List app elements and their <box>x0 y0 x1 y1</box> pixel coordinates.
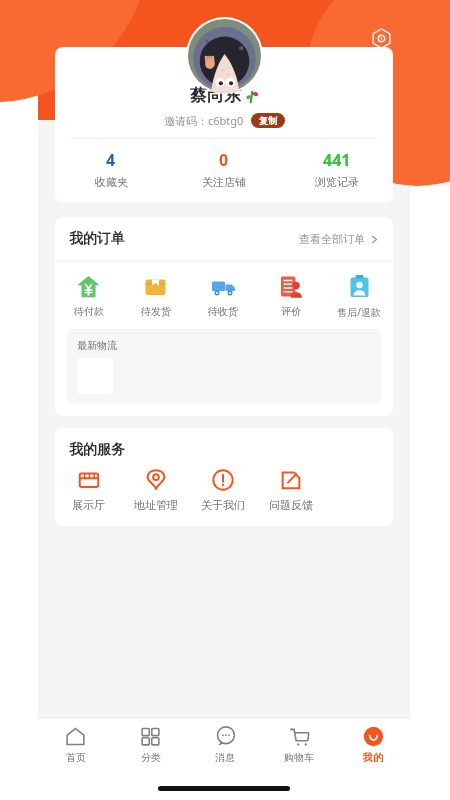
button[interactable]: 我的 <box>336 718 410 772</box>
staticText: 蔡尚东 <box>190 85 241 106</box>
staticText: 关于我们 <box>201 498 245 512</box>
staticText: 邀请码：c6btg0 <box>164 113 244 128</box>
staticText: 查看全部订单 <box>299 232 365 246</box>
button[interactable]: Settings <box>366 23 396 53</box>
button[interactable]: 待收货 <box>189 274 257 318</box>
staticText: 地址管理 <box>134 498 178 512</box>
staticText: 4 <box>106 149 116 171</box>
button[interactable]: 0 <box>167 149 280 189</box>
staticText: 购物车 <box>284 751 314 764</box>
staticText: 待发货 <box>141 305 171 318</box>
button[interactable]: 消息 <box>188 718 262 772</box>
button[interactable]: 问题反馈 <box>257 469 325 512</box>
button[interactable]: 4 <box>55 149 167 189</box>
staticText: 441 <box>323 149 351 171</box>
staticText: 浏览记录 <box>315 175 359 189</box>
staticText: 复制 <box>259 115 277 126</box>
button[interactable]: 展示厅 <box>55 469 122 512</box>
staticText: 关注店铺 <box>202 175 246 189</box>
staticText: 消息 <box>215 751 235 764</box>
staticText: 问题反馈 <box>269 498 313 512</box>
staticText: 售后/退款 <box>337 305 381 319</box>
button[interactable]: 分类 <box>113 718 188 772</box>
button[interactable]: 我的订单 <box>55 217 393 261</box>
staticText: 待收货 <box>208 305 238 318</box>
button[interactable]: 购物车 <box>262 718 336 772</box>
staticText: 分类 <box>141 751 161 764</box>
button[interactable]: 待付款 <box>55 274 122 318</box>
button[interactable]: 首页 <box>38 718 113 772</box>
staticText: 我的 <box>363 751 383 764</box>
button[interactable]: 地址管理 <box>122 469 189 512</box>
staticText: 0 <box>219 149 229 171</box>
button[interactable]: 售后/退款 <box>325 274 393 319</box>
staticText: 首页 <box>66 751 86 764</box>
staticText: 我的服务 <box>69 441 125 459</box>
staticText: 评价 <box>281 305 301 318</box>
button[interactable]: 评价 <box>257 274 325 318</box>
button[interactable]: 441 <box>280 149 393 189</box>
staticText: 展示厅 <box>72 498 105 512</box>
staticText: 待付款 <box>74 305 104 318</box>
button[interactable]: 关于我们 <box>189 469 257 512</box>
button[interactable]: 复制 <box>251 113 285 128</box>
staticText: 收藏夹 <box>95 175 128 189</box>
button[interactable] <box>186 17 263 94</box>
staticText: 最新物流 <box>77 339 117 352</box>
button[interactable]: 最新物流 <box>67 329 381 404</box>
staticText: 我的订单 <box>69 230 125 248</box>
button[interactable]: 待发货 <box>122 274 189 318</box>
